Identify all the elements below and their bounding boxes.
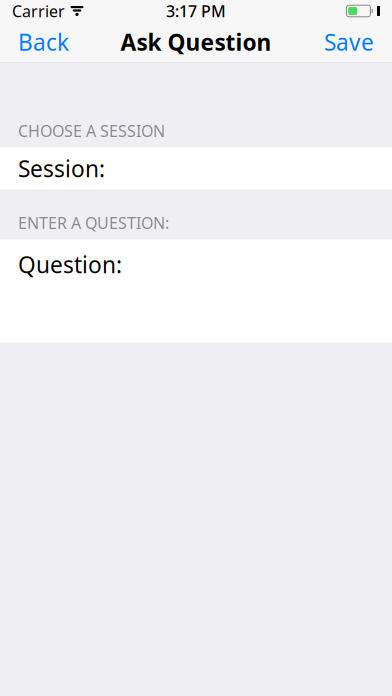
staticText: ENTER A QUESTION:: [18, 212, 169, 233]
staticText: Session:: [18, 153, 105, 183]
button[interactable]: Save: [306, 21, 392, 63]
button[interactable]: Question:: [0, 239, 392, 342]
staticText: Carrier: [12, 0, 65, 22]
staticText: Ask Question: [120, 27, 271, 57]
button[interactable]: Back: [0, 21, 87, 63]
staticText: Question:: [18, 249, 122, 280]
staticText: Back: [18, 27, 69, 57]
staticText: 3:17 PM: [166, 0, 226, 22]
staticText: Save: [324, 27, 374, 57]
button[interactable]: Session:: [0, 147, 392, 189]
staticText: CHOOSE A SESSION: [18, 120, 165, 141]
